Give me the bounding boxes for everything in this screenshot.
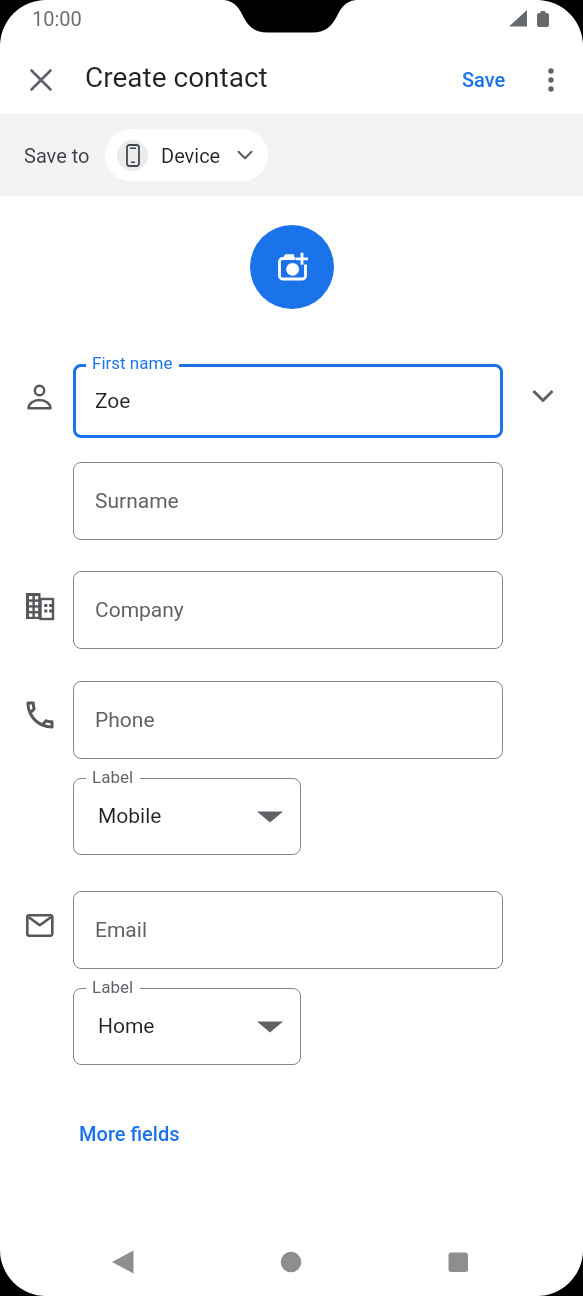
button[interactable]: More fields (79, 1122, 180, 1145)
button[interactable]: Phone (73, 681, 503, 759)
button[interactable] (0, 1240, 195, 1296)
button[interactable]: Email (73, 891, 503, 969)
button[interactable]: Zoe (73, 364, 503, 438)
staticText: Surname (95, 489, 179, 514)
button[interactable] (547, 68, 555, 92)
staticText: Label (92, 767, 134, 787)
button[interactable] (30, 69, 52, 91)
staticText: More fields (79, 1122, 180, 1145)
staticText: Email (95, 918, 147, 943)
button[interactable] (195, 1240, 389, 1296)
staticText: Save to (24, 144, 90, 167)
button[interactable]: Save (462, 68, 506, 91)
staticText: Save (462, 68, 506, 91)
staticText: Device (161, 144, 221, 167)
staticText: Phone (95, 708, 155, 733)
button[interactable]: Home (73, 988, 301, 1065)
staticText: 10:00 (32, 7, 82, 30)
button[interactable]: Company (73, 571, 503, 649)
staticText: Zoe (95, 389, 131, 414)
staticText: Create contact (85, 61, 268, 94)
button[interactable] (389, 1240, 583, 1296)
staticText: Home (98, 1014, 155, 1039)
staticText: First name (92, 353, 173, 373)
button[interactable]: Mobile (73, 778, 301, 855)
button[interactable] (250, 225, 334, 309)
staticText: Label (92, 977, 134, 997)
staticText: Company (95, 598, 184, 623)
staticText: Mobile (98, 804, 162, 829)
button[interactable]: Device (105, 129, 268, 181)
button[interactable]: Surname (73, 462, 503, 540)
